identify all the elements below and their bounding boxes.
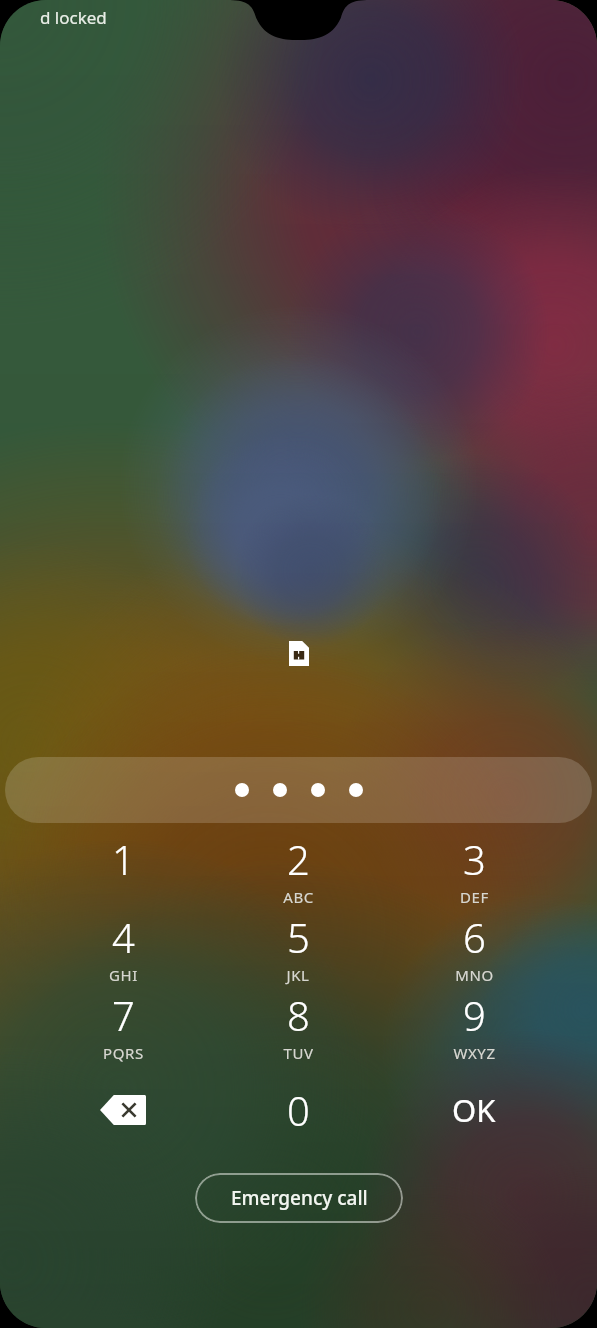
staticText: 4 [112, 910, 135, 964]
staticText: OK [452, 1089, 496, 1131]
staticText: 7 [112, 988, 135, 1042]
staticText: d locked [40, 6, 107, 29]
staticText: 3 [463, 832, 486, 886]
button[interactable]: 4 [51, 910, 195, 988]
staticText: GHI [109, 965, 138, 985]
staticText: JKL [286, 965, 310, 985]
button[interactable]: 6 [402, 910, 546, 988]
staticText: MNO [455, 965, 494, 985]
staticText: ABC [283, 887, 314, 907]
staticText: 8 [287, 988, 310, 1042]
button[interactable]: 2 [226, 832, 370, 910]
button[interactable]: OK [402, 1072, 546, 1148]
staticText: Emergency call [231, 1185, 368, 1211]
other: SIM card [289, 641, 309, 666]
button[interactable]: 3 [402, 832, 546, 910]
button[interactable] [5, 757, 592, 823]
staticText: PQRS [103, 1043, 144, 1063]
staticText: TUV [283, 1043, 314, 1063]
staticText: DEF [460, 887, 489, 907]
button[interactable]: 5 [226, 910, 370, 988]
button[interactable]: 8 [226, 988, 370, 1066]
staticText: 2 [287, 832, 310, 886]
staticText: 6 [463, 910, 486, 964]
button[interactable]: Backspace [61, 1072, 185, 1148]
staticText: WXYZ [453, 1043, 496, 1063]
staticText: 0 [287, 1083, 310, 1137]
button[interactable]: Emergency call [195, 1173, 403, 1223]
staticText: 9 [463, 988, 486, 1042]
staticText: 1 [112, 832, 135, 886]
button[interactable]: 0 [226, 1072, 370, 1148]
button[interactable]: 1 [51, 832, 195, 910]
button[interactable]: 7 [51, 988, 195, 1066]
staticText: 5 [287, 910, 310, 964]
button[interactable]: 9 [402, 988, 546, 1066]
